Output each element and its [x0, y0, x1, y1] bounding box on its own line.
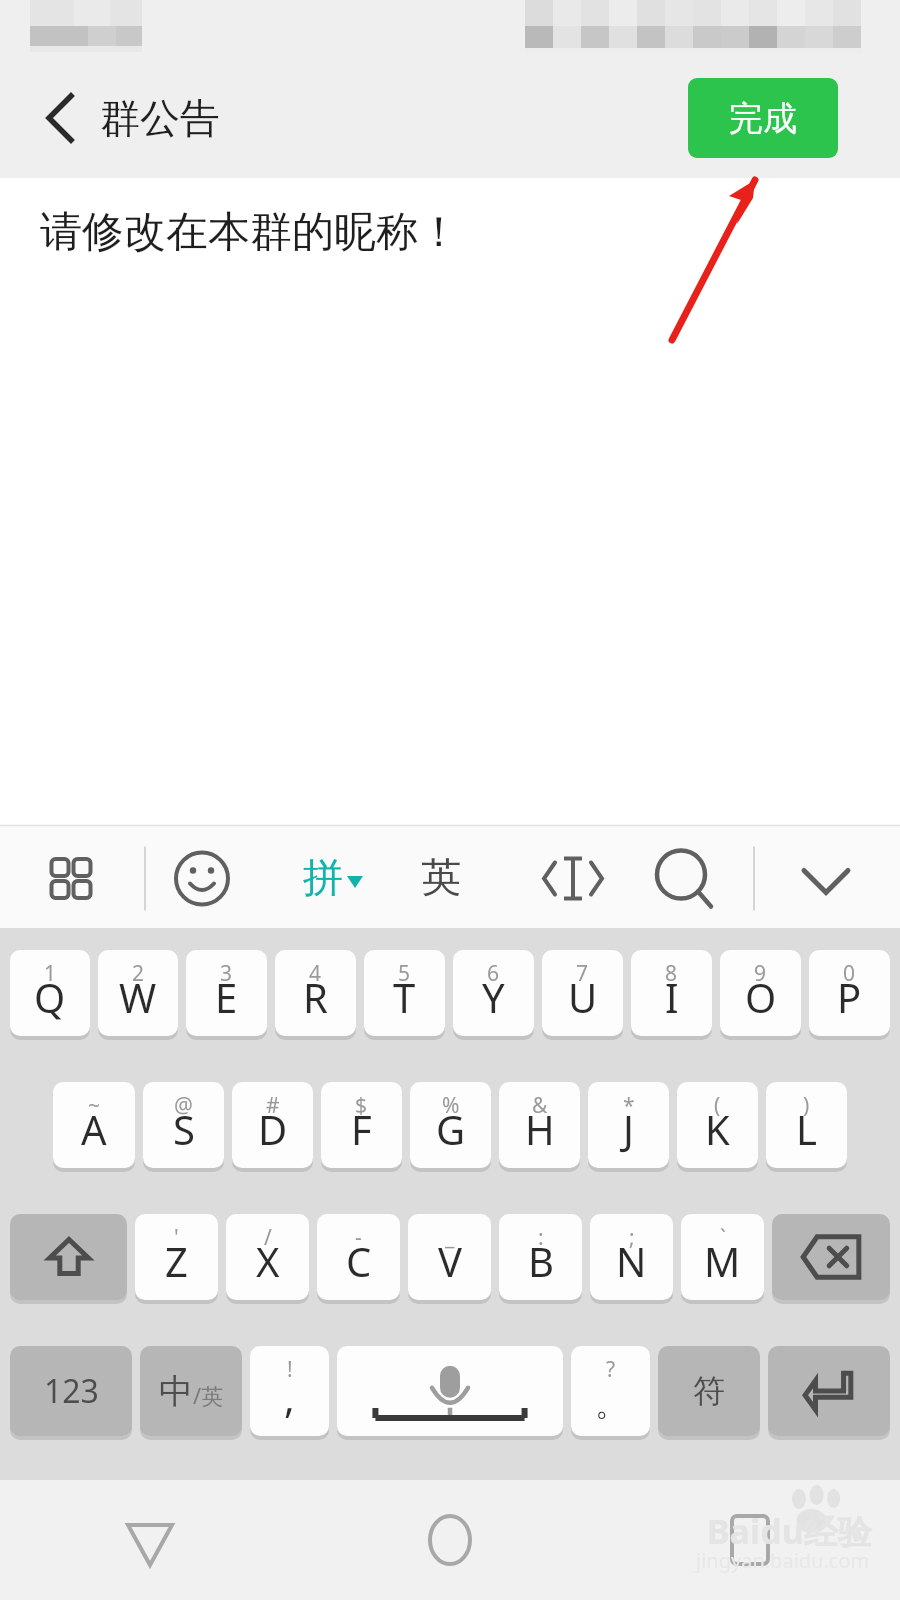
staticText: O [745, 970, 777, 1024]
staticText: Z [165, 1234, 188, 1288]
button[interactable]: - [317, 1214, 400, 1300]
staticText: S [173, 1102, 195, 1156]
staticText: D [258, 1102, 288, 1156]
button[interactable]: ? [571, 1346, 650, 1436]
staticText: ' [174, 1223, 179, 1252]
staticText: K [705, 1102, 730, 1156]
staticText: 拼 [303, 852, 343, 902]
staticText: 符 [693, 1371, 725, 1411]
button[interactable]: ` [681, 1214, 764, 1300]
staticText: ? [606, 1355, 616, 1384]
button[interactable]: ( [677, 1082, 758, 1168]
staticText: ! [287, 1355, 293, 1384]
button[interactable]: Enter [768, 1346, 890, 1436]
staticText: 4 [309, 959, 322, 988]
staticText: * [623, 1091, 635, 1120]
staticText: Y [482, 970, 505, 1024]
button[interactable]: Keyboard layouts [40, 832, 143, 922]
button[interactable]: Shift [10, 1214, 127, 1300]
staticText: : [538, 1223, 544, 1252]
button[interactable]: 5 [364, 950, 445, 1036]
staticText: % [442, 1091, 460, 1120]
staticText: 请修改在本群的昵称！ [40, 206, 460, 259]
staticText: 9 [754, 959, 767, 988]
staticText: I [665, 970, 679, 1024]
button[interactable]: 0 [809, 950, 890, 1036]
button[interactable]: ~ [53, 1082, 135, 1168]
staticText: # [266, 1091, 280, 1120]
button[interactable]: Backspace [772, 1214, 890, 1300]
staticText: J [623, 1102, 634, 1156]
staticText: _ [445, 1223, 455, 1252]
button[interactable]: 4 [275, 950, 356, 1036]
staticText: B [528, 1234, 554, 1288]
button[interactable]: Emoji [165, 832, 240, 922]
staticText: / [264, 1223, 272, 1252]
button[interactable]: 1 [10, 950, 90, 1036]
staticText: 群公告 [100, 93, 220, 143]
button[interactable]: * [588, 1082, 669, 1168]
staticText: ) [803, 1091, 810, 1120]
staticText: T [393, 970, 416, 1024]
button[interactable]: 8 [631, 950, 712, 1036]
button[interactable]: $ [321, 1082, 402, 1168]
staticText: L [796, 1102, 817, 1156]
staticText: 6 [487, 959, 500, 988]
button[interactable]: / [226, 1214, 309, 1300]
staticText: - [355, 1223, 362, 1252]
staticText: F [351, 1102, 372, 1156]
button[interactable]: Home [300, 1480, 600, 1600]
staticText: W [119, 970, 157, 1024]
button[interactable]: Hide keyboard [785, 832, 870, 922]
staticText: R [303, 970, 328, 1024]
button[interactable]: 完成 [688, 78, 838, 158]
button[interactable]: Chinese English toggle [140, 1346, 242, 1436]
button[interactable]: Move cursor [525, 832, 620, 922]
button[interactable]: ' [135, 1214, 218, 1300]
staticText: 英 [421, 852, 461, 902]
staticText: P [837, 970, 862, 1024]
staticText: 2 [132, 959, 145, 988]
button[interactable]: @ [143, 1082, 224, 1168]
button[interactable]: Back [24, 86, 88, 150]
button[interactable]: Space [337, 1346, 563, 1436]
button[interactable]: 3 [186, 950, 267, 1036]
button[interactable]: ! [250, 1346, 329, 1436]
staticText: 5 [398, 959, 411, 988]
staticText: N [616, 1234, 647, 1288]
button[interactable]: _ [408, 1214, 491, 1300]
button[interactable]: & [499, 1082, 580, 1168]
staticText: Baidu经验 [707, 1508, 872, 1554]
staticText: , [284, 1370, 295, 1424]
staticText: jingyan.baidu.com [696, 1547, 870, 1574]
button[interactable]: 7 [542, 950, 623, 1036]
staticText: 3 [220, 959, 233, 988]
button[interactable]: # [232, 1082, 313, 1168]
button[interactable]: 符 [658, 1346, 760, 1436]
staticText: U [568, 970, 598, 1024]
button[interactable]: 6 [453, 950, 534, 1036]
staticText: A [81, 1102, 107, 1156]
button[interactable]: 123 [10, 1346, 132, 1436]
button[interactable]: Back [0, 1480, 300, 1600]
button[interactable]: ) [766, 1082, 847, 1168]
button[interactable]: English input [400, 832, 485, 922]
staticText: H [525, 1102, 555, 1156]
button[interactable]: Search [640, 832, 725, 922]
staticText: ` [720, 1223, 726, 1252]
staticText: 8 [665, 959, 678, 988]
button[interactable]: : [499, 1214, 582, 1300]
button[interactable]: Pinyin input [290, 832, 375, 922]
button[interactable]: 2 [98, 950, 178, 1036]
button[interactable]: ; [590, 1214, 673, 1300]
button[interactable]: Recents [600, 1480, 900, 1600]
staticText: /英 [193, 1380, 224, 1410]
button[interactable]: 9 [720, 950, 801, 1036]
button[interactable]: % [410, 1082, 491, 1168]
staticText: M [704, 1234, 741, 1288]
staticText: C [346, 1234, 372, 1288]
staticText: G [436, 1102, 466, 1156]
staticText: 1 [44, 959, 57, 988]
staticText: & [532, 1091, 548, 1120]
staticText: ( [714, 1091, 721, 1120]
